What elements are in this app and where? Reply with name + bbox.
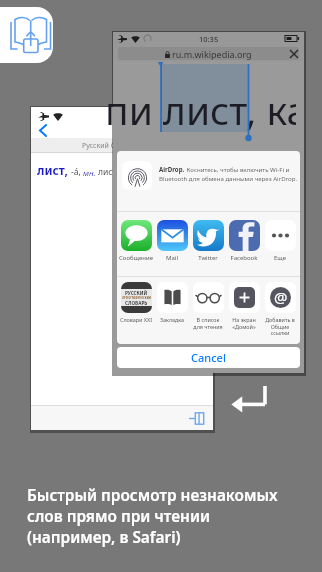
staticText: Mail xyxy=(154,254,190,262)
button[interactable]: Закладка xyxy=(154,282,190,323)
button[interactable]: РУССКИЙ xyxy=(118,282,154,323)
button[interactable]: Open in app xyxy=(185,408,207,428)
staticText: 10:35 xyxy=(199,34,219,44)
button[interactable]: Mail xyxy=(154,220,190,262)
staticText: для чтения xyxy=(190,323,226,330)
staticText: Коснитесь, чтобы включить Wi-Fi и xyxy=(185,165,290,173)
button[interactable]: Back xyxy=(33,119,53,141)
staticText: пи лист, ка xyxy=(105,83,296,136)
staticText: Bluetooth для обмена данными через AirDr… xyxy=(159,174,298,182)
staticText: Twitter xyxy=(190,254,226,262)
staticText: ОРФОГРАФИЧЕСКИЙ xyxy=(122,296,151,300)
button[interactable]: Сообщение xyxy=(118,220,154,262)
staticText: Сообщение xyxy=(118,254,154,262)
staticText: Cancel xyxy=(191,350,226,365)
button[interactable]: AirDrop xyxy=(122,161,152,190)
staticText: Русский Ор xyxy=(82,141,121,151)
staticText: РУССКИЙ xyxy=(125,290,148,296)
staticText: (например, в Safari) xyxy=(27,527,181,548)
staticText: Еще xyxy=(262,254,298,262)
staticText: AirDrop. xyxy=(159,165,185,173)
staticText: Facebook xyxy=(226,254,262,262)
staticText: Добавить в xyxy=(262,316,298,323)
button[interactable]: Dictionary share extension icon xyxy=(0,7,53,63)
button[interactable]: Twitter xyxy=(190,220,226,262)
button[interactable]: ru.m.wikipedia.org xyxy=(118,47,299,60)
staticText: -á, xyxy=(71,166,81,178)
button[interactable]: В список xyxy=(190,282,226,330)
staticText: лист, xyxy=(37,162,68,178)
staticText: В список xyxy=(190,316,226,323)
staticText: На экран xyxy=(226,316,262,323)
staticText: лист xyxy=(98,166,117,178)
staticText: «Домой» xyxy=(226,323,262,330)
button[interactable]: Еще xyxy=(262,220,298,262)
button[interactable]: На экран xyxy=(226,282,262,330)
staticText: Словари XXI xyxy=(118,316,154,323)
button[interactable]: Cancel xyxy=(117,347,300,368)
staticText: слов прямо при чтении xyxy=(27,506,211,527)
staticText: Закладка xyxy=(154,316,190,323)
staticText: Общие ссылки xyxy=(262,323,298,337)
staticText: СЛОВАРЬ xyxy=(125,300,148,306)
button[interactable]: Facebook xyxy=(226,220,262,262)
staticText: Быстрый просмотр незнакомых xyxy=(27,485,278,506)
staticText: мн. xyxy=(83,167,96,178)
staticText: @ xyxy=(274,287,288,307)
button[interactable]: @ xyxy=(262,282,298,337)
staticText: ru.m.wikipedia.org xyxy=(172,48,252,60)
button[interactable]: Close xyxy=(288,48,300,60)
